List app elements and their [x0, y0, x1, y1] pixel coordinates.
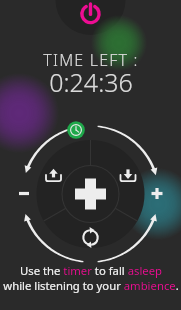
button[interactable]: Increase time — [145, 182, 169, 206]
button[interactable]: Download — [116, 161, 141, 186]
button[interactable]: Power — [78, 2, 103, 27]
staticText: TIME LEFT : — [43, 49, 139, 71]
staticText: Use the timer to fall asleep while liste… — [3, 263, 179, 293]
button[interactable]: Decrease time — [12, 182, 36, 206]
button[interactable]: Reset — [78, 225, 103, 250]
button[interactable]: Upload — [41, 161, 66, 186]
button[interactable]: Start timer — [70, 173, 111, 214]
staticText: 0:24:36 — [49, 65, 133, 99]
